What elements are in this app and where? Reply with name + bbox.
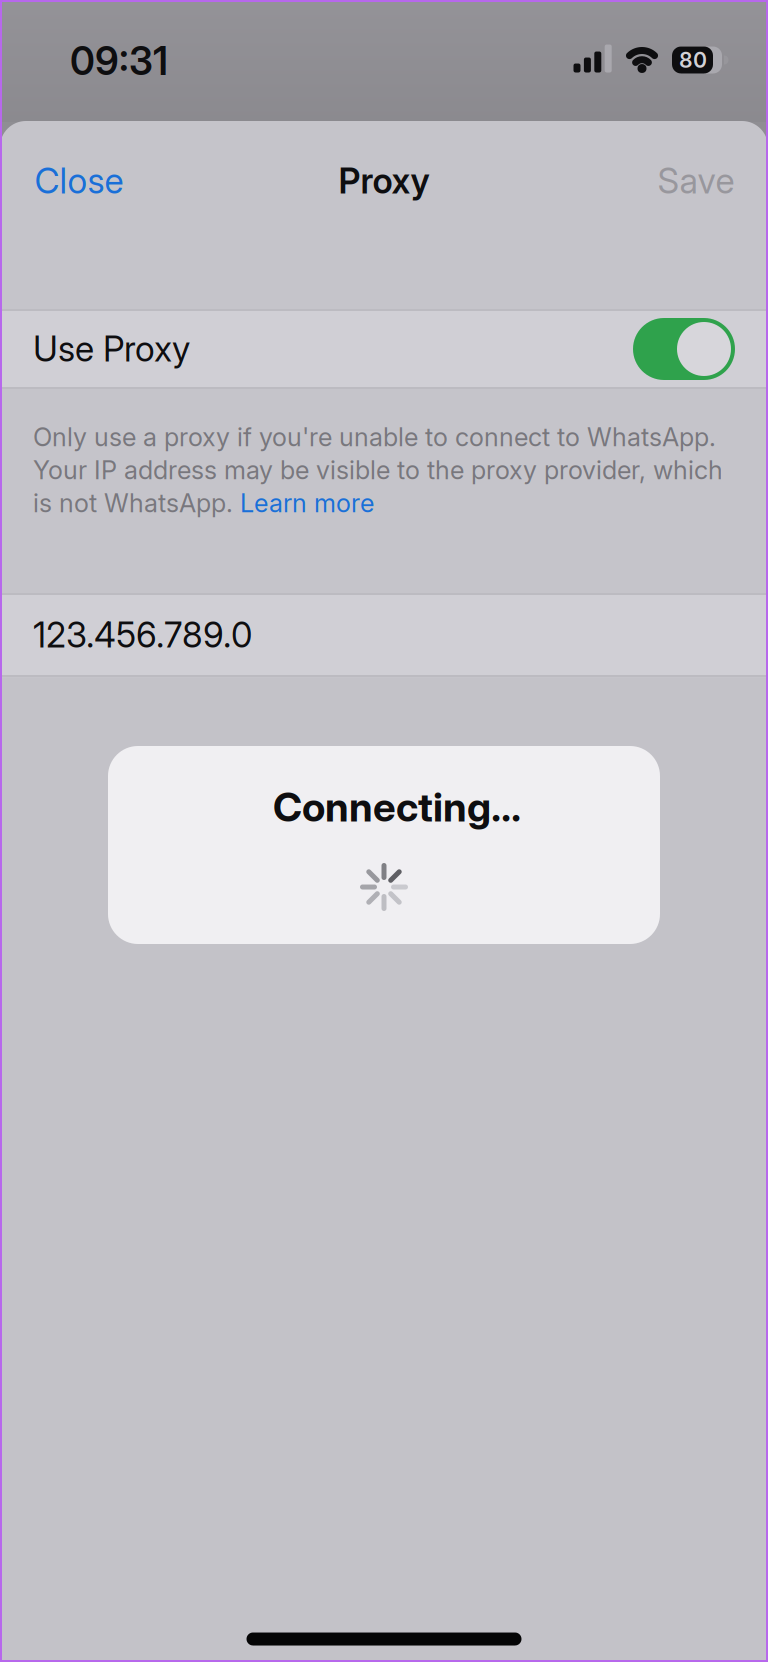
staticText: 123.456.789.0 [33, 615, 252, 655]
staticText: Only use a proxy if you're unable to con… [33, 422, 716, 452]
staticText: 09:31 [70, 38, 168, 84]
staticText: is not WhatsApp. [33, 488, 240, 518]
button[interactable]: 123.456.789.0 [0, 594, 768, 676]
button[interactable]: Use Proxy [633, 318, 735, 380]
staticText: Your IP address may be visible to the pr… [33, 455, 723, 485]
staticText: Connecting... [273, 783, 521, 831]
button[interactable]: Close [34, 161, 123, 201]
button[interactable]: Learn more [240, 488, 374, 518]
button[interactable]: Save [657, 161, 734, 201]
staticText: Learn more [240, 488, 374, 518]
staticText: Use Proxy [33, 329, 190, 369]
staticText: 80 [679, 47, 707, 73]
staticText: Save [657, 161, 734, 201]
staticText: Proxy [338, 161, 429, 201]
staticText: Close [34, 161, 123, 201]
